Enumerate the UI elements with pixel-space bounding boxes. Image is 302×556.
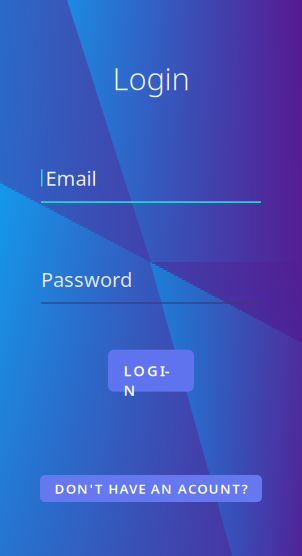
staticText: Login [112, 58, 189, 99]
button[interactable]: DON'T HAVE AN ACOUNT? [40, 475, 262, 502]
staticText: Email [45, 165, 96, 191]
staticText: LOGIN [124, 361, 178, 380]
staticText: DON'T HAVE AN ACOUNT? [54, 480, 247, 497]
button[interactable]: LOGIN [108, 350, 194, 392]
staticText: Password [41, 266, 132, 292]
